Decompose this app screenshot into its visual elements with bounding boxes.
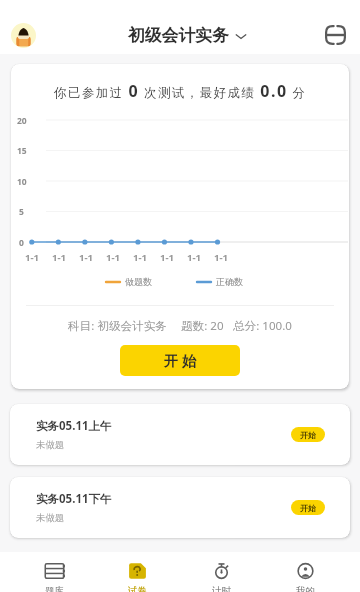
button[interactable]: 题库 <box>13 552 96 592</box>
staticText: 1-1 <box>52 251 67 264</box>
staticText: 你已参加过 0 次测试，最好成绩 0.0 分 <box>54 80 307 102</box>
staticText: 0 <box>19 237 24 249</box>
staticText: 开 始 <box>164 351 197 370</box>
staticText: 实务05.11下午 <box>36 491 112 507</box>
staticText: 题库 <box>45 585 64 592</box>
button[interactable]: Profile <box>11 23 36 48</box>
staticText: 1-1 <box>133 251 148 264</box>
staticText: 1-1 <box>160 251 175 264</box>
staticText: 1-1 <box>106 251 121 264</box>
staticText: 10 <box>17 176 27 188</box>
staticText: 20 <box>17 115 27 127</box>
staticText: 1-1 <box>79 251 94 264</box>
button[interactable]: 开始 <box>291 500 325 515</box>
staticText: 1-1 <box>187 251 202 264</box>
staticText: 题数: 20 <box>181 318 224 334</box>
staticText: 未做题 <box>36 512 65 524</box>
staticText: 5 <box>19 206 24 218</box>
staticText: 1-1 <box>214 251 229 264</box>
button[interactable]: 开 始 <box>120 345 240 376</box>
staticText: 试卷 <box>128 585 147 592</box>
button[interactable]: 试卷 <box>96 552 179 592</box>
staticText: 未做题 <box>36 439 65 451</box>
staticText: 正确数 <box>216 276 243 287</box>
button[interactable]: 计时 <box>179 552 263 592</box>
button[interactable]: 实务05.11下午 <box>10 477 350 538</box>
staticText: 15 <box>17 145 27 157</box>
staticText: 计时 <box>212 585 231 592</box>
staticText: 总分: 100.0 <box>233 318 292 334</box>
button[interactable]: 实务05.11上午 <box>10 404 350 465</box>
button[interactable]: 开始 <box>291 427 325 442</box>
staticText: 实务05.11上午 <box>36 418 112 434</box>
button[interactable]: Scan <box>325 25 346 45</box>
staticText: 开始 <box>300 503 316 513</box>
button[interactable]: 我的 <box>263 552 347 592</box>
staticText: 科目: 初级会计实务 <box>68 318 167 334</box>
staticText: 我的 <box>296 585 315 592</box>
staticText: 做题数 <box>125 276 152 287</box>
staticText: 开始 <box>300 430 316 440</box>
staticText: 1-1 <box>25 251 40 264</box>
staticText: 初级会计实务 <box>128 25 229 46</box>
